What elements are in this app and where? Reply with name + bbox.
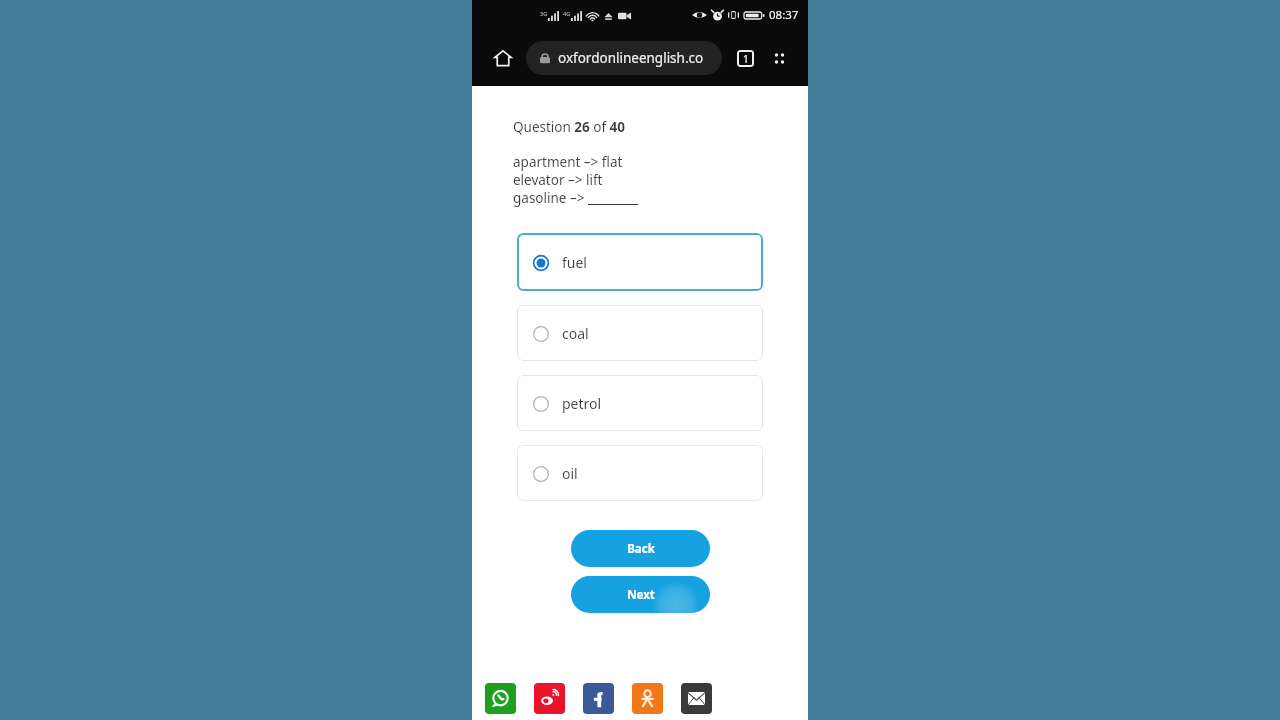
staticText: oil bbox=[562, 464, 578, 483]
button[interactable]: Tabs bbox=[730, 43, 760, 73]
staticText: elevator –> lift bbox=[513, 171, 603, 189]
staticText: gasoline –> bbox=[513, 189, 588, 207]
button[interactable]: Share by email bbox=[681, 683, 712, 714]
button[interactable]: oxfordonlineenglish.com bbox=[526, 41, 722, 75]
staticText: 08:37 bbox=[769, 7, 799, 23]
button[interactable]: Next bbox=[571, 576, 710, 613]
button[interactable]: Share on Weibo bbox=[534, 683, 565, 714]
button[interactable]: fuel bbox=[517, 233, 763, 291]
button[interactable]: Share on Odnoklassniki bbox=[632, 683, 663, 714]
staticText: coal bbox=[562, 324, 589, 343]
button[interactable]: Share on WhatsApp bbox=[485, 683, 516, 714]
button[interactable]: More options bbox=[764, 43, 794, 73]
staticText: oxfordonlineenglish.com bbox=[558, 49, 712, 67]
staticText: 4G bbox=[563, 10, 571, 17]
staticText: 1 bbox=[743, 52, 749, 66]
button[interactable]: Share on Facebook bbox=[583, 683, 614, 714]
staticText: Back bbox=[627, 541, 655, 557]
button[interactable]: coal bbox=[517, 305, 763, 361]
staticText: petrol bbox=[562, 394, 602, 413]
staticText: fuel bbox=[562, 253, 587, 272]
button[interactable]: oil bbox=[517, 445, 763, 501]
button[interactable]: Home bbox=[486, 41, 520, 75]
staticText: 3G bbox=[540, 10, 548, 17]
staticText: Question 26 of 40 bbox=[513, 118, 626, 136]
staticText: Next bbox=[627, 587, 655, 603]
button[interactable]: petrol bbox=[517, 375, 763, 431]
staticText: apartment –> flat bbox=[513, 153, 623, 171]
button[interactable]: Back bbox=[571, 530, 710, 567]
